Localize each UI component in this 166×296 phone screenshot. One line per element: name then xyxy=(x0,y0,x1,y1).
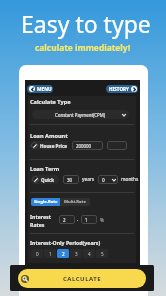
button[interactable]: 200000 xyxy=(72,141,103,150)
button[interactable]: 5 xyxy=(96,249,108,258)
staticText: 4 xyxy=(88,251,91,257)
staticText: . xyxy=(77,216,79,223)
button[interactable]: Constant Payment(CPM) xyxy=(32,110,129,119)
staticText: CALCULATE xyxy=(63,275,102,283)
button[interactable]: CALCULATE xyxy=(18,269,146,288)
staticText: 5 xyxy=(101,251,104,257)
staticText: Quick xyxy=(41,177,55,183)
button[interactable]: 30 xyxy=(63,175,79,184)
staticText: Single-Rate xyxy=(34,199,58,205)
staticText: Multi-Rate xyxy=(64,199,86,205)
button[interactable]: Multi-Rate xyxy=(60,198,90,206)
button[interactable]: HISTORY xyxy=(106,85,138,93)
staticText: 2 xyxy=(63,217,66,223)
staticText: 1 xyxy=(85,217,88,223)
staticText: % xyxy=(100,217,104,223)
staticText: MENU xyxy=(37,86,52,93)
staticText: 0 xyxy=(102,177,105,183)
staticText: Interest xyxy=(30,213,51,220)
staticText: Loan Term xyxy=(30,165,60,173)
staticText: 1 xyxy=(49,251,52,257)
staticText: 30 xyxy=(67,177,73,183)
staticText: years xyxy=(82,176,95,183)
other: Search xyxy=(21,275,29,283)
staticText: Calculate Type xyxy=(30,98,71,106)
staticText: Interest-Only Period(years) xyxy=(30,239,101,246)
button[interactable]: Single-Rate xyxy=(31,198,60,206)
button[interactable]: 2 xyxy=(57,249,69,258)
staticText: Easy to type xyxy=(21,8,151,39)
button[interactable]: 0 xyxy=(98,175,118,184)
staticText: Constant Payment(CPM) xyxy=(55,112,106,118)
staticText: 2 xyxy=(62,251,65,257)
button[interactable]: 1 xyxy=(44,249,56,258)
button[interactable]: 0 xyxy=(31,249,43,258)
staticText: months xyxy=(121,176,139,183)
staticText: Rates xyxy=(30,221,45,228)
button[interactable]: Quick xyxy=(31,175,59,184)
button[interactable]: 1 xyxy=(81,215,97,224)
staticText: House Price xyxy=(40,143,68,149)
button[interactable]: MENU xyxy=(27,85,53,93)
staticText: Loan Amount xyxy=(30,132,68,140)
button[interactable]: 3 xyxy=(70,249,82,258)
button[interactable]: House Price xyxy=(30,141,68,150)
button[interactable]: 4 xyxy=(83,249,95,258)
staticText: HISTORY xyxy=(109,86,129,92)
button[interactable]: 2 xyxy=(59,215,75,224)
staticText: 0 xyxy=(36,251,39,257)
staticText: 200000 xyxy=(76,143,92,149)
staticText: 3 xyxy=(75,251,78,257)
staticText: calculate immediately! xyxy=(35,42,131,53)
button[interactable] xyxy=(107,141,127,150)
